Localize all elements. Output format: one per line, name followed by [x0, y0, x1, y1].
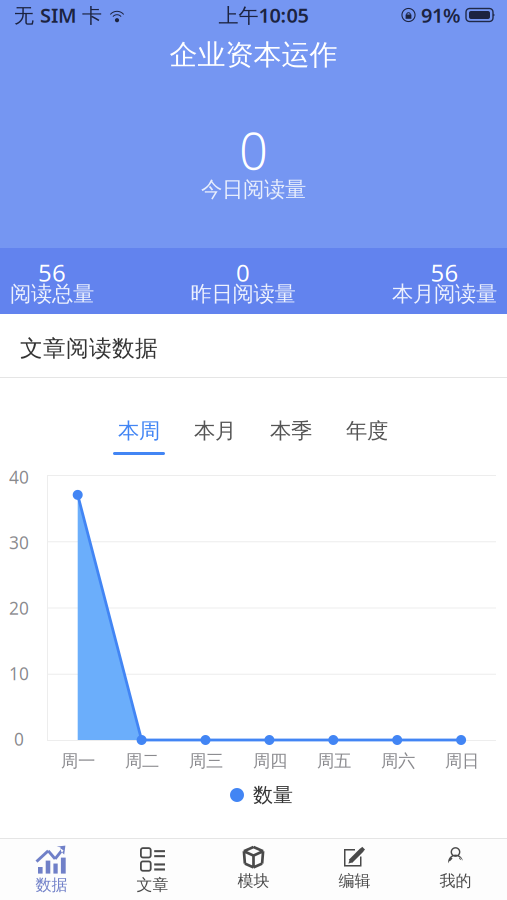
- button[interactable]: 编辑: [304, 839, 405, 900]
- staticText: 40: [9, 465, 29, 488]
- staticText: 0: [14, 727, 24, 750]
- staticText: 周日: [445, 750, 479, 772]
- staticText: 周三: [189, 750, 223, 772]
- staticText: 56: [430, 257, 458, 288]
- staticText: 本月阅读量: [392, 281, 497, 307]
- staticText: 年度: [346, 418, 388, 444]
- staticText: 本季: [270, 418, 312, 444]
- staticText: 0: [236, 257, 250, 288]
- staticText: 周六: [381, 750, 415, 772]
- staticText: 30: [9, 531, 29, 554]
- staticText: 本月: [194, 418, 236, 444]
- staticText: 20: [9, 596, 29, 619]
- button[interactable]: 年度: [329, 414, 405, 460]
- staticText: 企业资本运作: [169, 38, 337, 72]
- button[interactable]: 数据: [1, 839, 102, 900]
- staticText: 编辑: [338, 871, 370, 891]
- staticText: 91%: [421, 2, 461, 28]
- button[interactable]: 我的: [405, 839, 506, 900]
- staticText: 周五: [317, 750, 351, 772]
- staticText: 我的: [439, 871, 471, 891]
- button[interactable]: 本周: [101, 414, 177, 460]
- staticText: 56: [38, 257, 66, 288]
- staticText: 昨日阅读量: [190, 281, 295, 307]
- button[interactable]: 模块: [203, 839, 304, 900]
- staticText: 模块: [237, 871, 269, 891]
- staticText: 无 SIM 卡: [14, 2, 102, 28]
- staticText: 10: [9, 662, 29, 685]
- staticText: 数量: [253, 783, 293, 807]
- button[interactable]: 本月: [177, 414, 253, 460]
- button[interactable]: 文章: [102, 839, 203, 900]
- staticText: 本周: [118, 418, 160, 444]
- staticText: 周二: [125, 750, 159, 772]
- staticText: 周一: [61, 750, 95, 772]
- staticText: 数据: [35, 875, 67, 895]
- staticText: 文章阅读数据: [20, 335, 158, 362]
- staticText: 阅读总量: [10, 281, 94, 307]
- staticText: 0: [239, 116, 268, 184]
- staticText: 上午10:05: [218, 2, 308, 28]
- button[interactable]: 本季: [253, 414, 329, 460]
- staticText: 今日阅读量: [201, 176, 306, 203]
- staticText: 文章: [136, 875, 168, 895]
- staticText: 周四: [253, 750, 287, 772]
